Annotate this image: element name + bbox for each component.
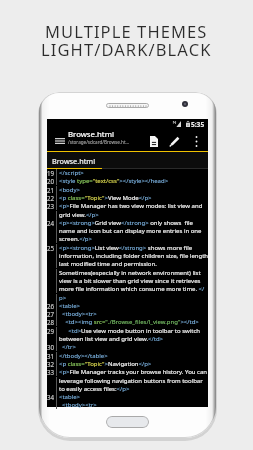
staticText: 22 [47, 194, 55, 202]
staticText: <p class="Topic">Navigation</p> [59, 360, 152, 368]
staticText: Browse.html [68, 129, 114, 140]
staticText: 23 [47, 202, 55, 210]
button[interactable]: Home [106, 416, 149, 428]
staticText: <p class="Topic">View Mode</p> [59, 194, 152, 202]
staticText: 32 [47, 360, 55, 368]
staticText: grid view.</p> [59, 211, 99, 219]
staticText: MULTIPLE THEMES [45, 20, 208, 42]
button[interactable]: Edit [165, 133, 183, 149]
staticText: more file information which consume more… [59, 285, 205, 293]
staticText: Browse.html [52, 156, 96, 166]
staticText: 26 [47, 302, 55, 310]
staticText: view is a bit slower than grid view sinc… [59, 277, 201, 285]
staticText: /storage/sdcard/Browse.ht... [68, 139, 142, 145]
staticText: <td><img src="./Browse_files/l_view.png"… [59, 318, 199, 326]
staticText: 31 [47, 352, 55, 360]
staticText: 29 [47, 327, 55, 335]
staticText: <p><strong>List view</strong> shows more… [59, 244, 193, 252]
staticText: 33 [47, 368, 55, 376]
staticText: <tbody><tr> [59, 401, 97, 409]
staticText: 5:35 [191, 120, 205, 129]
staticText: 25 [47, 244, 55, 252]
button[interactable]: Browse.html [47, 152, 102, 169]
staticText: 19 [47, 169, 55, 177]
button[interactable]: More options [189, 133, 204, 149]
staticText: <p>File Manager has two view modes: list… [59, 202, 203, 210]
staticText: <table> [59, 302, 81, 310]
staticText: </tr> [59, 343, 76, 351]
staticText: <p><strong>Grid view</strong> only shows… [59, 219, 193, 227]
staticText: 21 [47, 186, 55, 194]
staticText: <tbody><tr> [59, 310, 97, 318]
staticText: </script> [59, 169, 84, 177]
staticText: 28 [47, 318, 55, 326]
staticText: <body> [59, 186, 80, 194]
staticText: Sometimes(especially in network environm… [59, 269, 201, 277]
staticText: <td>Use view mode button in toolbar to s… [59, 327, 201, 335]
staticText: p> [59, 294, 67, 302]
staticText: <style type="text/css"></style></head> [59, 177, 169, 185]
staticText: <table> [59, 393, 81, 401]
button[interactable]: File [145, 133, 163, 149]
staticText: screen.</p> [59, 235, 92, 243]
staticText: 27 [47, 310, 55, 318]
staticText: information, including folder children s… [59, 252, 208, 260]
staticText: 34 [47, 393, 55, 401]
staticText: name and icon but can display more entri… [59, 227, 202, 235]
staticText: LIGHT/DARK/BLACK [41, 38, 212, 60]
staticText: between list view and grid view.</td> [59, 335, 164, 343]
button[interactable]: Navigation menu [51, 134, 68, 147]
staticText: 20 [47, 177, 55, 185]
staticText: 24 [47, 219, 55, 227]
staticText: 30 [47, 343, 55, 351]
staticText: leverage following navigation buttons fr… [59, 377, 203, 385]
staticText: to easily access files:</p> [59, 385, 130, 393]
staticText: </tbody></table> [59, 352, 108, 360]
staticText: last modified time and permission. [59, 260, 157, 268]
staticText: <p>File Manager tracks your browse histo… [59, 368, 207, 376]
